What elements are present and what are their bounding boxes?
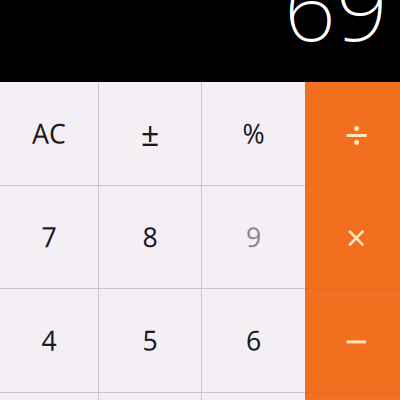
staticText: % <box>242 116 264 151</box>
button[interactable]: 9 <box>202 186 305 288</box>
button[interactable]: AC <box>0 82 98 185</box>
button[interactable]: 5 <box>99 289 201 392</box>
staticText: 5 <box>142 323 157 358</box>
button[interactable]: 6 <box>202 289 305 392</box>
button[interactable]: % <box>202 82 305 185</box>
staticText: ± <box>141 112 159 155</box>
staticText: 4 <box>41 323 56 358</box>
staticText: 8 <box>142 219 157 255</box>
staticText: 7 <box>41 219 56 255</box>
staticText: AC <box>32 116 66 151</box>
button[interactable]: Subtract <box>305 289 400 392</box>
staticText: 69 <box>284 0 388 66</box>
staticText: 9 <box>246 219 261 255</box>
staticText: 6 <box>246 323 261 358</box>
staticText: × <box>346 213 367 261</box>
staticText: − <box>344 313 368 368</box>
button[interactable]: Divide <box>305 82 400 185</box>
staticText: ÷ <box>344 105 368 162</box>
button[interactable]: 8 <box>99 186 201 288</box>
button[interactable]: 4 <box>0 289 98 392</box>
button[interactable]: Multiply <box>305 186 400 288</box>
button[interactable]: 7 <box>0 186 98 288</box>
button[interactable]: ± <box>99 82 201 185</box>
